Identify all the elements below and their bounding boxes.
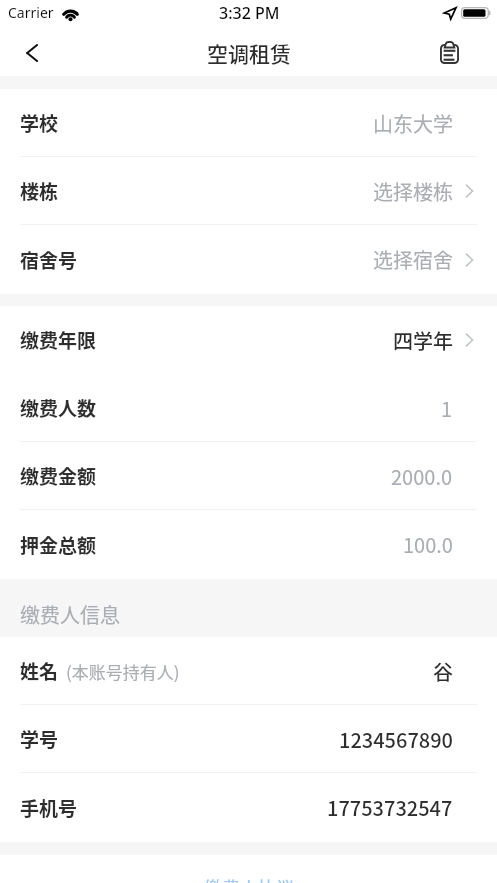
staticText: 宿舍号 (20, 246, 78, 274)
button[interactable]: 学校 (0, 89, 497, 157)
staticText: (本账号持有人) (66, 659, 180, 684)
staticText: 1 (441, 394, 453, 423)
button[interactable]: My orders (439, 29, 497, 76)
button[interactable]: 手机号 (0, 773, 497, 842)
staticText: 学号 (20, 725, 59, 753)
staticText: 山东大学 (373, 109, 453, 138)
staticText: 缴费人数 (20, 394, 97, 422)
staticText: 空调租赁 (207, 38, 291, 68)
staticText: 四学年 (393, 326, 453, 355)
button[interactable]: 学号 (0, 705, 497, 773)
staticText: 缴费人协议 (204, 874, 294, 883)
staticText: 2000.0 (391, 462, 453, 491)
staticText: 选择宿舍 (373, 245, 453, 274)
staticText: 手机号 (20, 794, 78, 822)
staticText: 姓名 (20, 657, 59, 685)
staticText: 缴费人信息 (20, 600, 120, 629)
staticText: 100.0 (403, 530, 453, 559)
staticText: 17753732547 (327, 793, 453, 822)
button[interactable]: 缴费年限 (0, 306, 497, 374)
staticText: Carrier (8, 3, 54, 22)
staticText: 学校 (20, 109, 59, 137)
button[interactable]: 宿舍号 (0, 225, 497, 294)
button[interactable]: 缴费金额 (0, 442, 497, 510)
staticText: 1234567890 (339, 725, 453, 754)
button[interactable]: 缴费人数 (0, 374, 497, 442)
button[interactable]: 押金总额 (0, 510, 497, 579)
button[interactable]: 楼栋 (0, 157, 497, 225)
staticText: 3:32 PM (219, 2, 280, 24)
staticText: 缴费金额 (20, 462, 97, 490)
button[interactable]: 缴费人协议 (204, 874, 294, 883)
staticText: 楼栋 (20, 177, 59, 205)
button[interactable]: 姓名 (0, 637, 497, 705)
staticText: 押金总额 (20, 531, 97, 559)
button[interactable]: Back (0, 29, 56, 76)
staticText: 选择楼栋 (373, 177, 453, 206)
staticText: 缴费年限 (20, 326, 97, 354)
staticText: 谷 (433, 657, 453, 686)
